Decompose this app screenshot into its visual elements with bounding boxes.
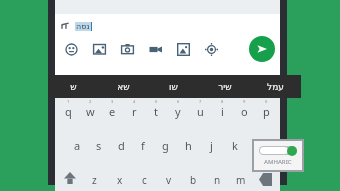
button[interactable]: 0	[255, 99, 277, 131]
button[interactable]: v	[157, 167, 181, 191]
staticText: v	[166, 173, 172, 187]
staticText: s	[96, 138, 102, 153]
staticText: r	[132, 104, 137, 119]
staticText: p	[263, 104, 270, 119]
button[interactable]: Backspace	[253, 167, 277, 191]
button[interactable]: c	[132, 167, 157, 191]
staticText: z	[92, 173, 97, 187]
button[interactable]: Location	[202, 40, 220, 58]
button[interactable]: Send	[249, 36, 275, 62]
staticText: l	[256, 138, 259, 153]
button[interactable]: ש	[48, 75, 98, 98]
button[interactable]: 7	[189, 99, 211, 131]
button[interactable]: 6	[167, 99, 189, 131]
staticText: w	[86, 104, 95, 119]
staticText: 8	[221, 99, 224, 104]
button[interactable]: עמל	[250, 75, 301, 98]
button[interactable]: AMHARIC	[254, 141, 302, 170]
button[interactable]: s	[88, 133, 110, 165]
staticText: ש	[70, 82, 77, 92]
button[interactable]: z	[82, 167, 107, 191]
staticText: 2	[89, 99, 92, 104]
staticText: d	[118, 138, 125, 153]
button[interactable]: a	[66, 133, 88, 165]
button[interactable]: b	[181, 167, 205, 191]
button[interactable]: נסה	[55, 16, 280, 36]
button[interactable]: d	[110, 133, 132, 165]
staticText: x	[117, 173, 123, 187]
staticText: n	[214, 173, 221, 187]
staticText: m	[236, 173, 246, 187]
button[interactable]: g	[154, 133, 177, 165]
staticText: AMHARIC	[264, 158, 292, 166]
staticText: 1	[67, 99, 70, 104]
button[interactable]: Sticker	[174, 40, 192, 58]
staticText: שא	[117, 82, 130, 92]
button[interactable]: j	[200, 133, 223, 165]
button[interactable]: שיר	[199, 75, 250, 98]
button[interactable]: 5	[145, 99, 167, 131]
button[interactable]: Gallery	[90, 40, 108, 58]
button[interactable]: m	[229, 167, 253, 191]
staticText: שיר	[218, 82, 232, 92]
button[interactable]: 4	[123, 99, 145, 131]
staticText: 7	[199, 99, 202, 104]
staticText: i	[221, 104, 224, 119]
button[interactable]: Emoji	[62, 40, 80, 58]
staticText: נסה	[76, 22, 90, 31]
staticText: y	[175, 104, 181, 119]
staticText: j	[210, 138, 213, 153]
button[interactable]: 2	[79, 99, 101, 131]
button[interactable]: 1	[58, 99, 79, 131]
staticText: f	[141, 138, 145, 153]
staticText: o	[241, 104, 248, 119]
staticText: 0	[265, 99, 268, 104]
staticText: e	[109, 104, 116, 119]
staticText: h	[185, 138, 192, 153]
staticText: עמל	[267, 82, 284, 92]
button[interactable]: שו	[148, 75, 199, 98]
button[interactable]: Video	[146, 40, 164, 58]
button[interactable]: l	[246, 133, 269, 165]
staticText: t	[154, 104, 158, 119]
button[interactable]: k	[223, 133, 246, 165]
staticText: 9	[243, 99, 246, 104]
staticText: k	[232, 138, 238, 153]
staticText: u	[197, 104, 204, 119]
button[interactable]: n	[205, 167, 229, 191]
button[interactable]: Shift	[58, 167, 82, 191]
button[interactable]: שא	[98, 75, 148, 98]
button[interactable]: h	[177, 133, 200, 165]
button[interactable]: Camera	[118, 40, 136, 58]
staticText: 6	[177, 99, 180, 104]
button[interactable]: 8	[211, 99, 233, 131]
staticText: 4	[133, 99, 136, 104]
button[interactable]: f	[132, 133, 154, 165]
staticText: g	[162, 138, 169, 153]
button[interactable]: x	[107, 167, 132, 191]
staticText: 3	[111, 99, 114, 104]
button[interactable]: 9	[233, 99, 255, 131]
staticText: שו	[169, 82, 178, 92]
staticText: b	[190, 173, 197, 187]
button[interactable]: 3	[101, 99, 123, 131]
staticText: 5	[155, 99, 158, 104]
staticText: q	[65, 104, 72, 119]
staticText: a	[74, 138, 81, 153]
staticText: c	[142, 173, 147, 187]
